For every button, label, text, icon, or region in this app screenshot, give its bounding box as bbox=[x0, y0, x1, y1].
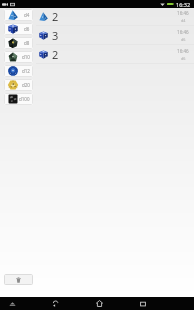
staticText: d6 bbox=[24, 26, 30, 32]
button[interactable]: 3 bbox=[36, 26, 194, 44]
staticText: d8 bbox=[24, 40, 30, 46]
button[interactable]: 2 bbox=[36, 8, 194, 25]
button[interactable]: Recents bbox=[133, 297, 153, 310]
staticText: d4 bbox=[181, 18, 186, 23]
button[interactable]: 2 bbox=[36, 45, 194, 63]
button[interactable]: Hide keyboard bbox=[4, 297, 20, 310]
button[interactable]: d6 bbox=[4, 23, 33, 35]
staticText: 3 bbox=[52, 28, 59, 43]
staticText: 2 bbox=[52, 47, 59, 62]
staticText: d20 bbox=[22, 82, 30, 88]
staticText: d4 bbox=[24, 12, 30, 18]
staticText: d12 bbox=[22, 68, 30, 74]
staticText: 16:46 bbox=[177, 48, 189, 54]
button[interactable]: d20 bbox=[4, 79, 33, 91]
button[interactable]: Clear rolls bbox=[4, 274, 33, 285]
staticText: d10 bbox=[22, 54, 30, 60]
button[interactable]: d4 bbox=[4, 9, 33, 21]
staticText: 16:46 bbox=[177, 10, 189, 16]
staticText: d6 bbox=[181, 56, 186, 61]
staticText: d100 bbox=[19, 96, 30, 102]
staticText: 16:32 bbox=[176, 1, 191, 8]
staticText: 2 bbox=[52, 9, 59, 24]
staticText: 16:46 bbox=[177, 29, 189, 35]
staticText: d6 bbox=[181, 37, 186, 42]
button[interactable]: d10 bbox=[4, 51, 33, 63]
button[interactable]: d12 bbox=[4, 65, 33, 77]
button[interactable]: Back bbox=[45, 297, 65, 310]
button[interactable]: d100 bbox=[4, 93, 33, 105]
button[interactable]: Home bbox=[89, 297, 109, 310]
button[interactable]: d8 bbox=[4, 37, 33, 49]
